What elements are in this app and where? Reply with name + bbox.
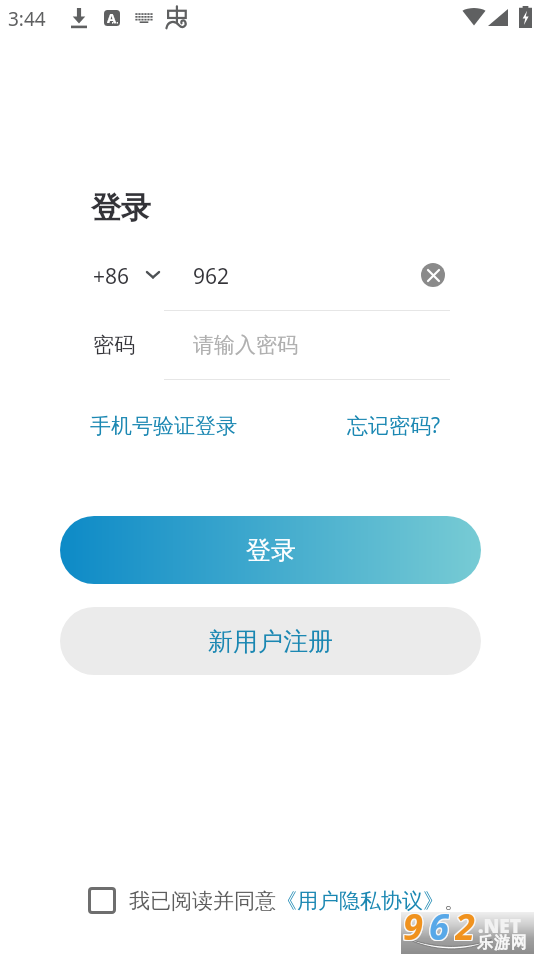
staticText: 忘记密码? xyxy=(347,411,441,440)
staticText: 9 xyxy=(404,902,424,944)
staticText: 请输入密码 xyxy=(193,332,298,358)
staticText: 2 xyxy=(455,901,475,943)
button[interactable]: 新用户注册 xyxy=(60,607,481,675)
staticText: 9 xyxy=(403,903,423,945)
button[interactable]: 手机号验证登录 xyxy=(87,408,239,444)
staticText: 2 xyxy=(456,902,476,944)
staticText: 9 xyxy=(403,902,423,944)
staticText: 6 xyxy=(428,903,448,945)
staticText: 2 xyxy=(454,901,474,943)
staticText: 2 xyxy=(454,903,474,945)
button[interactable]: +86 xyxy=(93,252,163,300)
staticText: 《用户隐私协议》 xyxy=(276,888,444,914)
staticText: 9 xyxy=(403,901,423,943)
staticText: 密码 xyxy=(93,332,135,358)
staticText: 9 xyxy=(402,902,422,944)
staticText: A xyxy=(107,10,116,25)
button[interactable]: 忘记密码? xyxy=(345,407,442,443)
staticText: 9 xyxy=(402,903,422,945)
button[interactable]: Clear phone number xyxy=(421,263,445,287)
staticText: 2 xyxy=(455,903,475,945)
staticText: +86 xyxy=(93,262,130,291)
button[interactable]: 登录 xyxy=(60,516,481,584)
staticText: .NET xyxy=(478,913,521,939)
staticText: 6 xyxy=(430,901,450,943)
staticText: 6 xyxy=(429,901,449,943)
staticText: 2 xyxy=(455,902,475,944)
staticText: 新用户注册 xyxy=(208,626,333,657)
staticText: 9 xyxy=(404,903,424,945)
staticText: 9 xyxy=(402,901,422,943)
staticText: 2 xyxy=(456,903,476,945)
staticText: 6 xyxy=(428,901,448,943)
button[interactable]: 《用户隐私协议》 xyxy=(276,888,444,914)
staticText: 6 xyxy=(429,902,449,944)
staticText: 。 xyxy=(444,888,465,914)
staticText: 2 xyxy=(456,901,476,943)
button[interactable]: Agree to user privacy policy xyxy=(88,887,116,914)
staticText: 我已阅读并同意 xyxy=(129,888,276,914)
staticText: 6 xyxy=(430,903,450,945)
staticText: 手机号验证登录 xyxy=(90,413,237,439)
staticText: 6 xyxy=(428,902,448,944)
staticText: 乐游网 xyxy=(477,933,528,953)
staticText: 9 xyxy=(404,901,424,943)
staticText: 登录 xyxy=(246,535,296,566)
staticText: 3:44 xyxy=(8,6,46,32)
staticText: 登录 xyxy=(91,189,151,227)
staticText: 6 xyxy=(429,903,449,945)
staticText: 962 xyxy=(193,262,230,291)
staticText: 6 xyxy=(430,902,450,944)
staticText: 2 xyxy=(454,902,474,944)
